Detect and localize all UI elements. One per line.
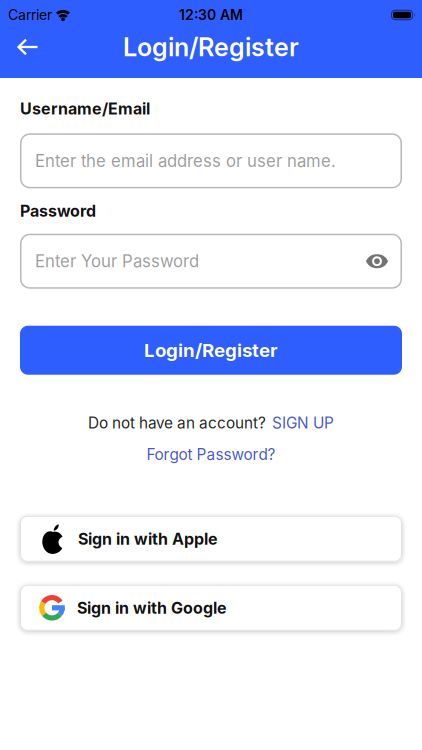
button[interactable]: Sign in with Apple bbox=[20, 516, 402, 562]
staticText: 12:30 AM bbox=[179, 6, 243, 23]
staticText: Login/Register bbox=[144, 339, 278, 361]
staticText: Forgot Password? bbox=[146, 445, 275, 464]
button[interactable]: Sign in with Google bbox=[20, 585, 402, 631]
staticText: Do not have an account? bbox=[88, 414, 266, 432]
staticText: Enter Your Password bbox=[35, 251, 199, 271]
button[interactable]: Forgot Password? bbox=[146, 445, 275, 464]
staticText: Enter the email address or user name. bbox=[35, 151, 336, 171]
staticText: Password bbox=[20, 201, 96, 221]
staticText: Sign in with Apple bbox=[78, 529, 218, 548]
button[interactable]: Show password bbox=[366, 254, 402, 268]
staticText: Username/Email bbox=[20, 99, 150, 118]
staticText: Login/Register bbox=[123, 32, 299, 62]
staticText: Carrier bbox=[8, 6, 52, 23]
staticText: Sign in with Google bbox=[77, 598, 227, 617]
button[interactable]: Login/Register bbox=[20, 326, 402, 375]
button[interactable]: Back bbox=[0, 38, 39, 55]
staticText: SIGN UP bbox=[272, 414, 334, 432]
button[interactable]: SIGN UP bbox=[272, 414, 334, 432]
